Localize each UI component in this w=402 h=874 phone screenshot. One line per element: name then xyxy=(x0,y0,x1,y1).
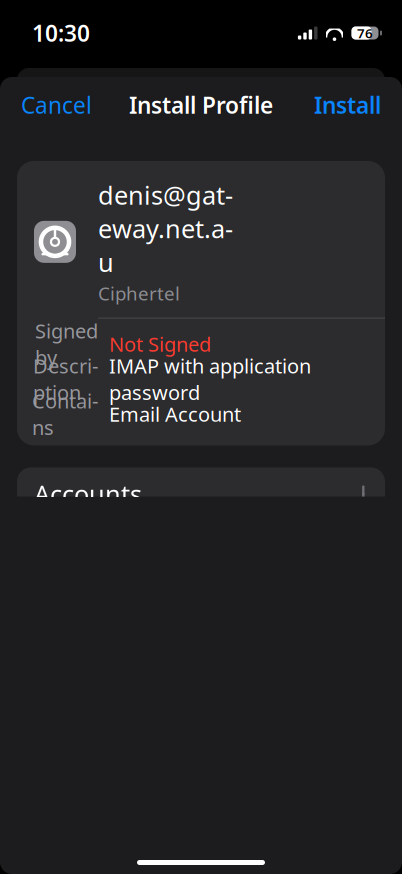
staticText: Not Signed xyxy=(109,331,211,357)
staticText: Signed by xyxy=(35,317,98,370)
button[interactable]: Accounts xyxy=(17,467,385,520)
staticText: Accounts xyxy=(34,477,142,511)
button[interactable]: Install xyxy=(304,82,391,128)
staticText: IMAP with application password xyxy=(109,352,311,405)
staticText: Install Profile xyxy=(129,90,273,120)
staticText: denis@gateway.net.au xyxy=(98,178,233,279)
staticText: Contains xyxy=(32,387,98,440)
button[interactable]: Cancel xyxy=(11,82,102,128)
staticText: 10:30 xyxy=(32,18,90,48)
staticText: Email Account xyxy=(109,401,241,427)
staticText: Description xyxy=(33,352,98,405)
staticText: Install xyxy=(314,90,381,120)
staticText: Cancel xyxy=(21,90,92,120)
staticText: 76 xyxy=(357,24,373,42)
staticText: Ciphertel xyxy=(98,281,180,306)
